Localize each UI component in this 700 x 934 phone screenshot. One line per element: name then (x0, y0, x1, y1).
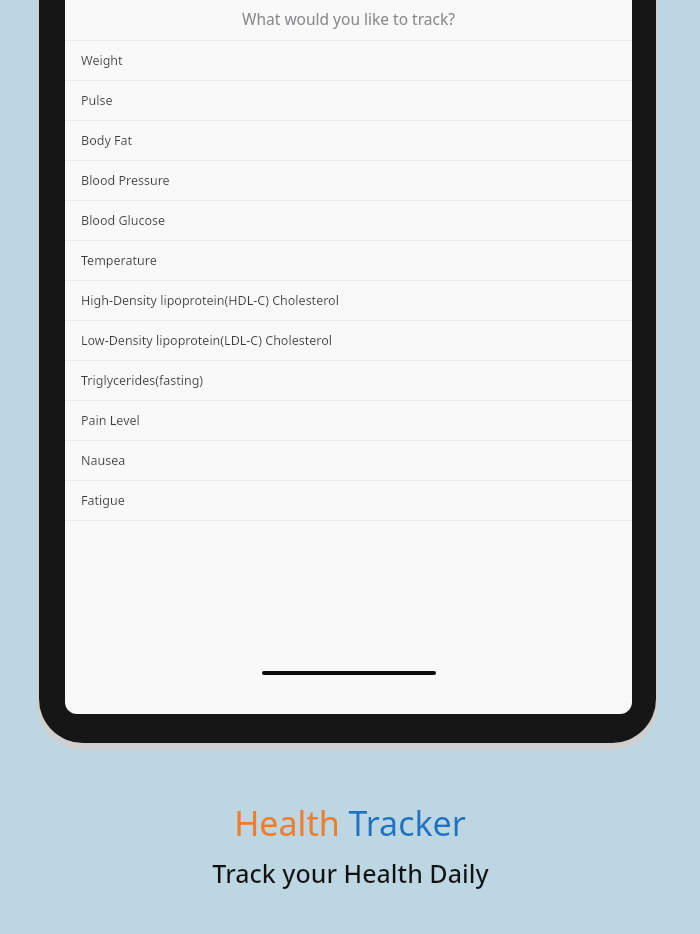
button[interactable]: Fatigue (65, 481, 632, 520)
button[interactable]: Body Fat (65, 121, 632, 160)
staticText: Body Fat (81, 132, 133, 149)
staticText: Weight (81, 52, 123, 69)
staticText: Fatigue (81, 492, 125, 509)
staticText: Pulse (81, 92, 113, 109)
staticText: Track your Health Daily (212, 856, 489, 890)
button[interactable]: Nausea (65, 441, 632, 480)
staticText: Temperature (81, 252, 157, 269)
staticText: Triglycerides(fasting) (81, 372, 204, 389)
button[interactable]: High-Density lipoprotein(HDL-C) Choleste… (65, 281, 632, 320)
staticText: High-Density lipoprotein(HDL-C) Choleste… (81, 292, 339, 309)
staticText: Blood Glucose (81, 212, 166, 229)
staticText: Pain Level (81, 412, 140, 429)
staticText: Health Tracker (234, 800, 466, 846)
staticText: Nausea (81, 452, 126, 469)
button[interactable]: Low-Density lipoprotein(LDL-C) Cholester… (65, 321, 632, 360)
button[interactable]: Weight (65, 41, 632, 80)
button[interactable]: Pain Level (65, 401, 632, 440)
staticText: Blood Pressure (81, 172, 170, 189)
button[interactable]: Temperature (65, 241, 632, 280)
staticText: What would you like to track? (242, 8, 455, 29)
button[interactable]: Blood Pressure (65, 161, 632, 200)
button[interactable]: Triglycerides(fasting) (65, 361, 632, 400)
button[interactable]: Blood Glucose (65, 201, 632, 240)
button[interactable]: Pulse (65, 81, 632, 120)
staticText: Low-Density lipoprotein(LDL-C) Cholester… (81, 332, 332, 349)
